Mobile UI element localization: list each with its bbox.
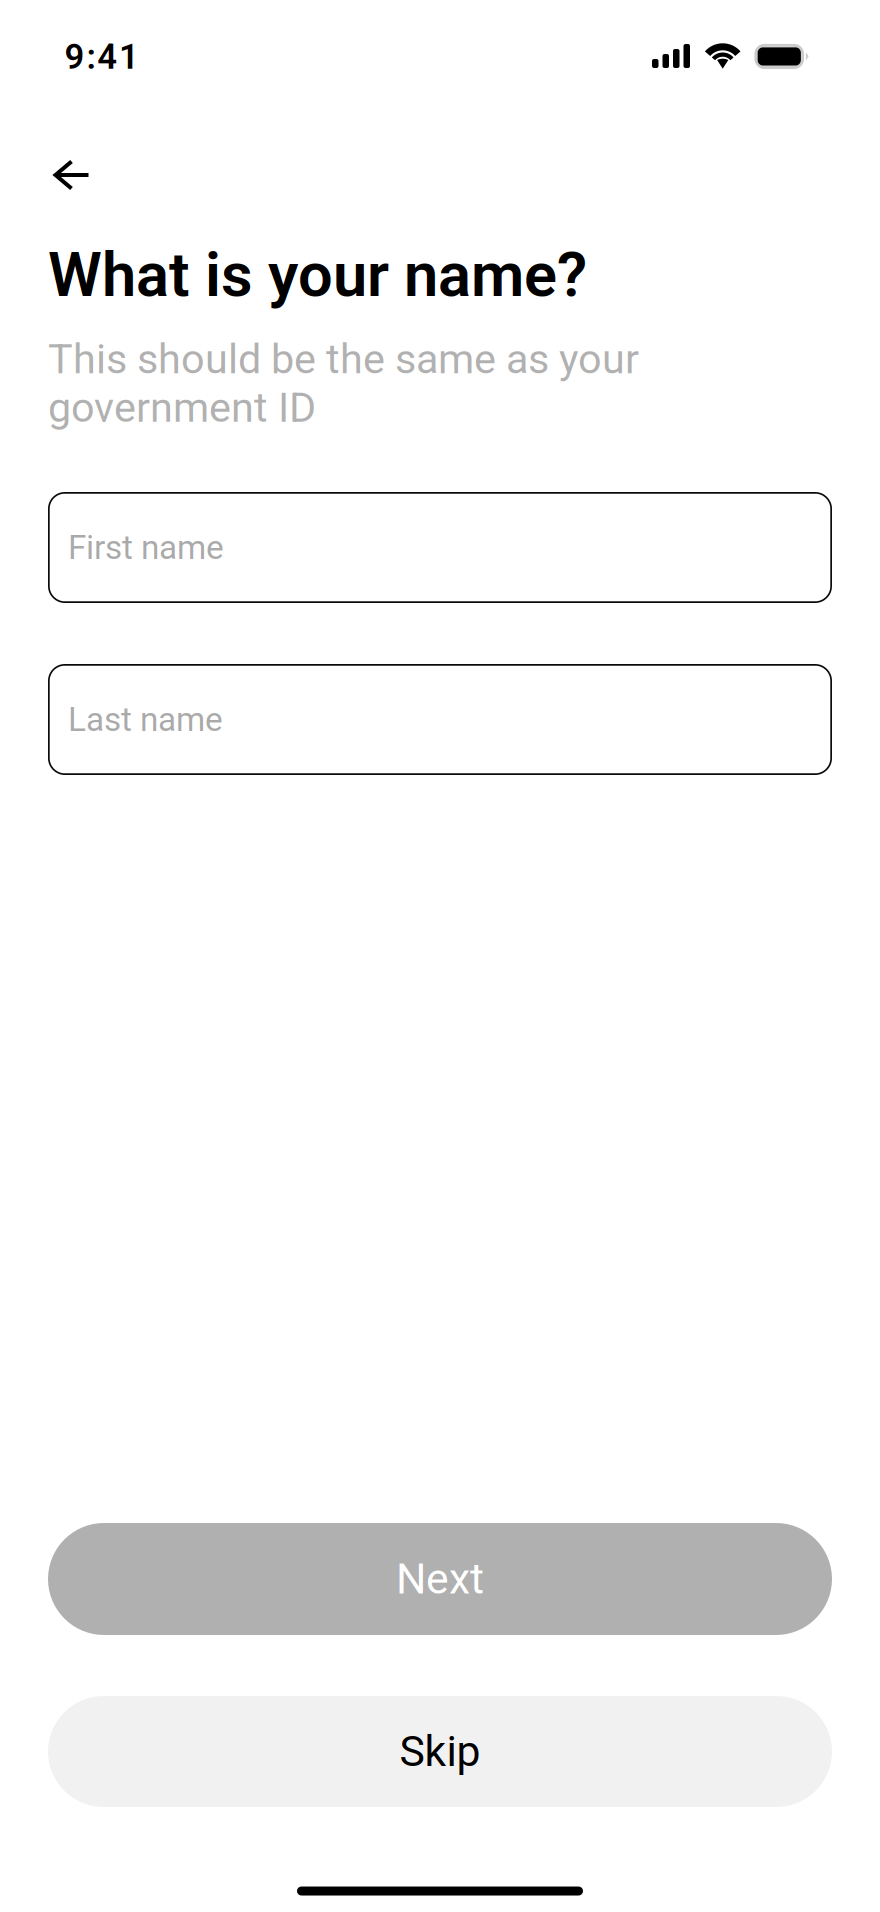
staticText: Skip (399, 1726, 480, 1776)
staticText: Next (396, 1554, 484, 1604)
button[interactable]: Skip (48, 1696, 832, 1807)
staticText: What is your name? (48, 239, 587, 311)
staticText: 9:41 (65, 37, 139, 77)
button[interactable]: Next (48, 1523, 832, 1635)
button[interactable]: Last name (48, 664, 832, 775)
staticText: Last name (68, 700, 223, 739)
staticText: First name (68, 528, 224, 567)
staticText: This should be the same as your governme… (48, 335, 639, 432)
button[interactable]: Back (28, 131, 116, 219)
button[interactable]: First name (48, 492, 832, 603)
